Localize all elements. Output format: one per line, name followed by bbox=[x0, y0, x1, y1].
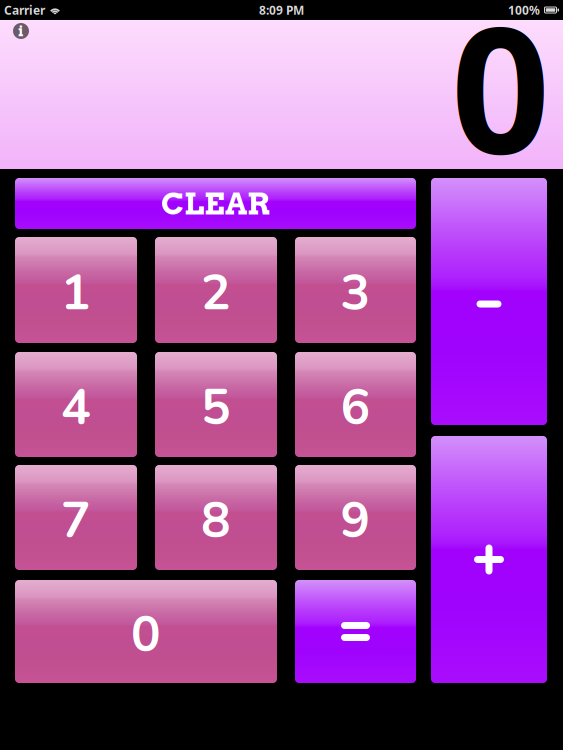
staticText: 100% bbox=[508, 2, 540, 18]
staticText: 8 bbox=[201, 487, 231, 554]
staticText: 4 bbox=[61, 374, 91, 441]
button[interactable]: Info bbox=[13, 23, 29, 39]
staticText: 2 bbox=[201, 259, 231, 327]
staticText: 1 bbox=[61, 259, 91, 327]
button[interactable]: 1 bbox=[0, 0, 563, 750]
button[interactable]: 5 bbox=[0, 0, 563, 750]
button[interactable]: 3 bbox=[0, 0, 563, 750]
button[interactable]: 6 bbox=[0, 0, 563, 750]
staticText: 5 bbox=[201, 374, 231, 441]
button[interactable]: 2 bbox=[0, 0, 563, 750]
button[interactable]: 7 bbox=[0, 0, 563, 750]
button[interactable]: 0 bbox=[0, 0, 563, 750]
staticText: i bbox=[18, 22, 24, 40]
staticText: 6 bbox=[340, 374, 370, 441]
staticText: 8:09 PM bbox=[259, 2, 304, 18]
button[interactable]: CLEAR bbox=[0, 0, 563, 750]
staticText: 7 bbox=[61, 487, 91, 554]
staticText: 0 bbox=[131, 601, 161, 668]
staticText: 3 bbox=[340, 259, 370, 327]
staticText: CLEAR bbox=[161, 185, 270, 222]
button[interactable]: 9 bbox=[0, 0, 563, 750]
button[interactable]: Equals bbox=[0, 0, 563, 750]
button[interactable]: 8 bbox=[0, 0, 563, 750]
staticText: 0 bbox=[451, 0, 550, 204]
button[interactable]: Plus bbox=[0, 0, 563, 750]
button[interactable]: 4 bbox=[0, 0, 563, 750]
staticText: 9 bbox=[340, 487, 370, 554]
button[interactable]: Minus bbox=[0, 0, 563, 750]
staticText: Carrier bbox=[4, 2, 45, 18]
